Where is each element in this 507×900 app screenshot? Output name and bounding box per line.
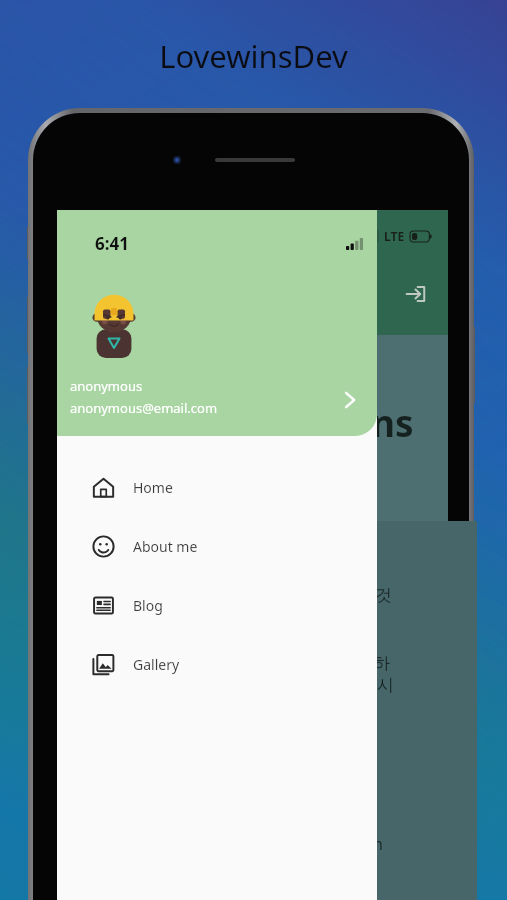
staticText: anonymous@email.com [70,399,218,417]
staticText: 것 [375,585,392,606]
button[interactable]: Gallery [57,635,377,694]
staticText: LTE [384,228,405,244]
button[interactable]: Log out [396,275,434,313]
staticText: 시 [377,675,394,696]
staticText: ns [371,397,414,447]
staticText: Home [133,478,173,497]
staticText: Gallery [133,655,180,674]
staticText: h [373,833,383,855]
button[interactable]: About me [57,517,377,576]
staticText: About me [133,537,198,556]
staticText: 하 [373,653,390,674]
staticText: 6:41 [95,232,129,255]
button[interactable]: 6:41 [57,210,377,436]
staticText: LovewinsDev [159,35,348,77]
button[interactable]: Blog [57,576,377,635]
staticText: anonymous [70,377,143,395]
staticText: Blog [133,596,163,615]
button[interactable]: Home [57,458,377,517]
